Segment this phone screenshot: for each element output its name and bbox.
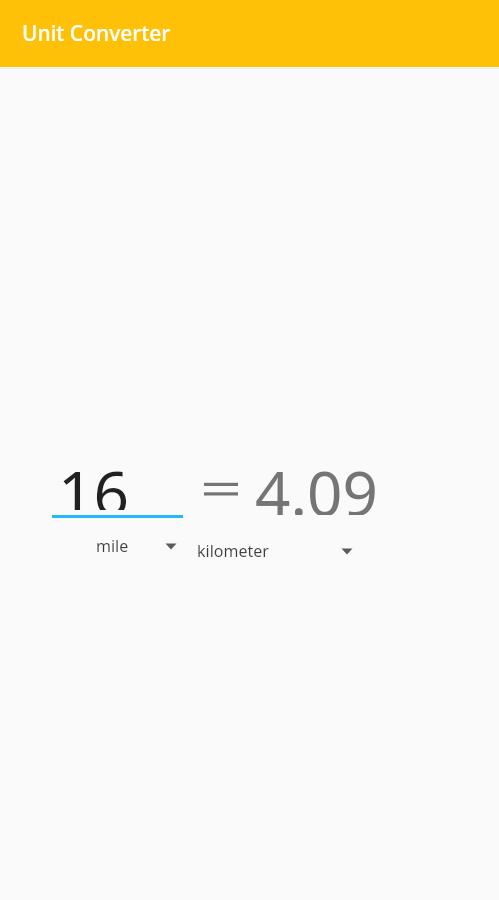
staticText: kilometer — [197, 540, 269, 562]
staticText: mile — [96, 535, 129, 557]
button[interactable]: Select target unit, kilometer — [183, 536, 359, 566]
staticText: 4.09 — [255, 450, 379, 515]
staticText: 16 — [58, 450, 129, 510]
staticText: Unit Converter — [22, 19, 171, 48]
button[interactable]: 16 — [52, 450, 183, 518]
button[interactable]: Select source unit, mile — [52, 531, 183, 561]
